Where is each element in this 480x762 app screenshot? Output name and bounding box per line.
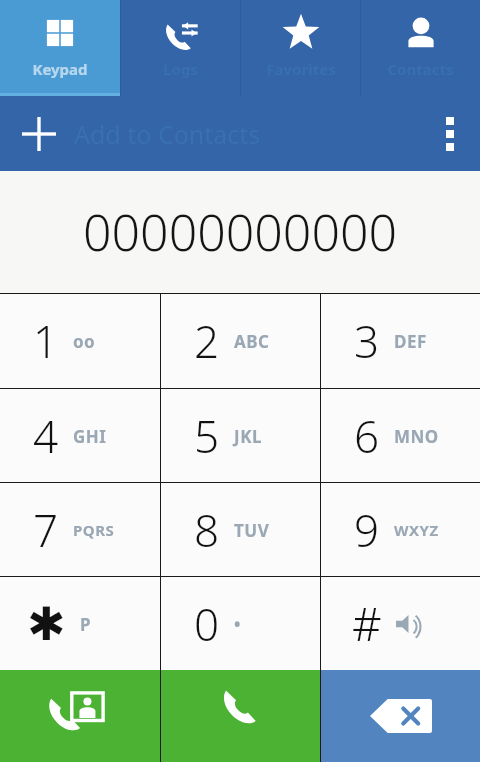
staticText: 3 [354,311,380,371]
staticText: P [80,613,92,636]
button[interactable]: 4 [0,389,160,482]
button[interactable]: 3 [321,294,480,388]
staticText: DEF [394,330,427,353]
button[interactable]: 6 [321,389,480,482]
staticText: Logs [163,59,198,79]
staticText: 2 [194,311,220,371]
button[interactable]: Backspace [321,670,480,762]
button[interactable]: Video call [0,670,160,762]
staticText: Keypad [32,59,88,79]
staticText: ✱ [27,597,66,651]
staticText: 7 [33,500,59,560]
staticText: TUV [234,519,270,542]
button[interactable]: More options [420,96,480,171]
staticText: 0 [194,594,220,654]
staticText: WXYZ [394,520,439,540]
staticText: 9 [354,500,380,560]
button[interactable]: Call [161,670,320,762]
staticText: 1 [33,311,59,371]
button[interactable]: 9 [321,483,480,576]
button[interactable]: Keypad [0,0,120,96]
button[interactable]: # [321,577,480,670]
button[interactable]: Favorites [241,0,360,96]
staticText: 6 [354,406,380,466]
staticText: oo [73,330,96,353]
button[interactable]: 1 [0,294,160,388]
staticText: 8 [194,500,220,560]
button[interactable]: ✱ [0,577,160,670]
button[interactable]: Add to Contacts [0,96,480,171]
staticText: GHI [73,425,107,448]
button[interactable]: 0 [161,577,320,670]
staticText: 5 [194,406,220,466]
staticText: Contacts [387,59,454,79]
staticText: Favorites [266,59,336,79]
staticText: Add to Contacts [74,117,261,151]
button[interactable]: 7 [0,483,160,576]
staticText: 00000000000 [83,198,398,266]
staticText: JKL [234,425,262,448]
staticText: ABC [234,330,270,353]
button[interactable]: Logs [121,0,240,96]
staticText: • [234,613,241,636]
staticText: PQRS [73,520,115,540]
staticText: # [352,592,382,655]
button[interactable]: 8 [161,483,320,576]
staticText: 4 [33,406,59,466]
button[interactable]: 2 [161,294,320,388]
other: Add to Contacts [22,117,56,151]
button[interactable]: Contacts [361,0,480,96]
staticText: MNO [394,425,439,448]
button[interactable]: 5 [161,389,320,482]
